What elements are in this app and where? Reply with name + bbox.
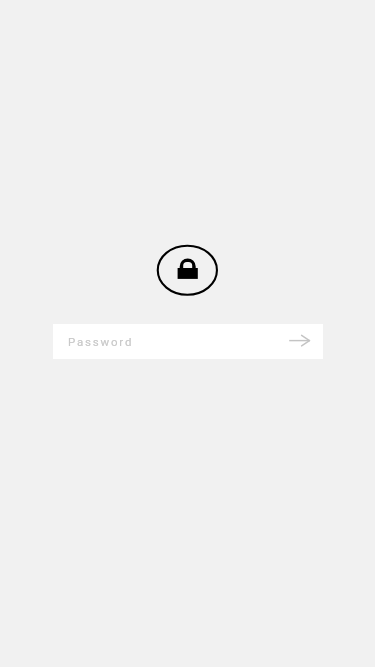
button[interactable]: Submit password [285, 327, 313, 355]
button[interactable]: Password [53, 324, 323, 359]
other: Locked [153, 242, 222, 298]
staticText: Password [68, 335, 134, 348]
